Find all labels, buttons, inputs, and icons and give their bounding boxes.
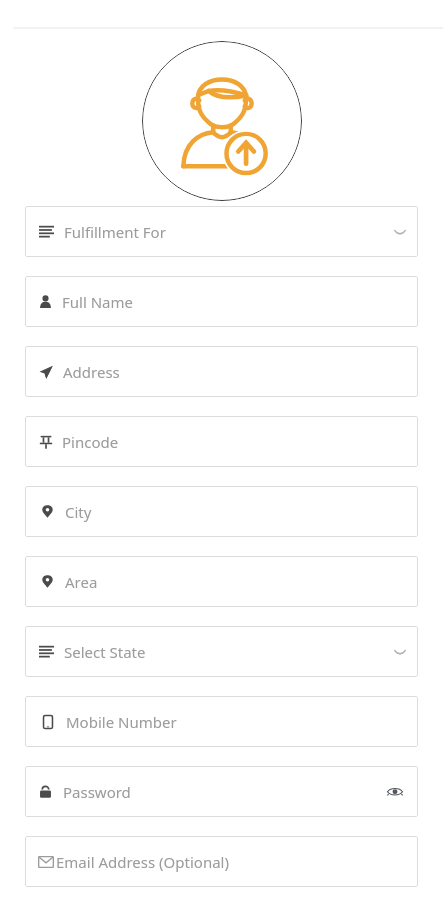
staticText: Pincode	[62, 432, 119, 452]
staticText: City	[65, 502, 92, 522]
staticText: Area	[65, 572, 98, 592]
button[interactable]: Password	[25, 766, 418, 817]
staticText: Address	[63, 362, 120, 382]
button[interactable]: Show password	[384, 781, 406, 803]
staticText: Email Address (Optional)	[56, 852, 229, 872]
button[interactable]: Add profile photo	[142, 41, 302, 201]
button[interactable]: Address	[25, 346, 418, 397]
button[interactable]: Fulfillment For	[25, 206, 418, 257]
button[interactable]: Area	[25, 556, 418, 607]
button[interactable]: City	[25, 486, 418, 537]
button[interactable]: Full Name	[25, 276, 418, 327]
staticText: Password	[63, 782, 131, 802]
staticText: Full Name	[62, 292, 133, 312]
button[interactable]: Email Address (Optional)	[25, 836, 418, 887]
button[interactable]: Pincode	[25, 416, 418, 467]
staticText: Select State	[64, 642, 146, 662]
staticText: Fulfillment For	[64, 222, 166, 242]
staticText: Mobile Number	[66, 712, 177, 732]
button[interactable]: Select State	[25, 626, 418, 677]
button[interactable]: Mobile Number	[25, 696, 418, 747]
